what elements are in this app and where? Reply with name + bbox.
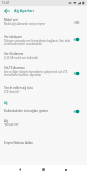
button[interactable]: Home bbox=[36, 165, 50, 174]
button[interactable]: Toggle bbox=[71, 69, 82, 78]
staticText: Mobil veri bbox=[4, 18, 18, 22]
button[interactable]: Ağ bbox=[0, 116, 87, 130]
button[interactable]: Tercih edilen ağ türü bbox=[0, 83, 87, 97]
staticText: Tercih edilen ağ türü bbox=[4, 86, 33, 90]
staticText: Ses ve diğer iletişim hizmetlerini geliş… bbox=[4, 70, 68, 76]
button[interactable]: Recents bbox=[59, 165, 73, 174]
staticText: LTE (önerilir) bbox=[4, 90, 20, 94]
staticText: Ağ bbox=[4, 119, 8, 123]
button[interactable]: Kullanılabilen tüm ağları göster bbox=[0, 106, 87, 116]
staticText: Erişim Noktası Adları bbox=[4, 141, 34, 145]
button[interactable]: Back bbox=[13, 165, 27, 174]
staticText: Ağ bbox=[4, 101, 8, 105]
staticText: Veri dolaşımı bbox=[4, 35, 23, 39]
staticText: Kullanılabilen tüm ağları göster bbox=[4, 109, 49, 113]
staticText: 4,35 GB mobil veri kullanıldı bbox=[4, 56, 38, 60]
staticText: VoLTE Araması bbox=[4, 66, 25, 70]
button[interactable]: Toggle bbox=[71, 18, 82, 27]
button[interactable]: VoLTE Araması bbox=[0, 62, 87, 80]
staticText: Mobil ağ kullanarak veriye erişme bbox=[4, 22, 45, 26]
button[interactable]: Veri dolaşımı bbox=[0, 30, 87, 49]
button[interactable]: Back bbox=[2, 6, 11, 15]
staticText: 13:47 bbox=[2, 1, 10, 5]
button[interactable]: Veri Kullanımı bbox=[0, 49, 87, 63]
staticText: Dolaşım sırasında veri hizmetlerine bağl… bbox=[4, 39, 70, 45]
button[interactable]: Erişim Noktası Adları bbox=[0, 138, 87, 148]
staticText: Veri Kullanımı bbox=[4, 52, 24, 56]
button[interactable]: Mobil veri bbox=[0, 15, 87, 29]
button[interactable]: Toggle bbox=[71, 35, 82, 44]
button[interactable]: Toggle bbox=[71, 107, 82, 116]
staticText: Ağ Ayarları bbox=[14, 8, 34, 13]
staticText: "MEGAFON" bbox=[4, 123, 19, 127]
